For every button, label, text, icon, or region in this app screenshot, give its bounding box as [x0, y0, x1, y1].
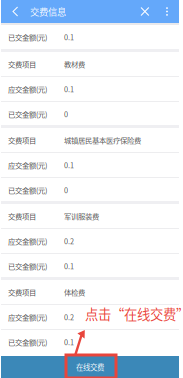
staticText: 0.2	[64, 312, 74, 322]
staticText: 0	[64, 109, 68, 119]
staticText: 0.1	[64, 32, 74, 42]
button[interactable]: 在线交费	[1, 356, 179, 378]
button[interactable]: Back	[1, 0, 30, 23]
staticText: 教材费	[64, 59, 85, 69]
staticText: 体检费	[64, 287, 85, 297]
staticText: 交费项目	[8, 135, 36, 145]
staticText: 军训服装费	[64, 211, 99, 221]
staticText: 已交金额(元)	[8, 32, 47, 42]
staticText: 0.1	[64, 261, 74, 271]
staticText: 0.1	[64, 160, 74, 170]
staticText: 已交金额(元)	[8, 109, 47, 119]
staticText: 交费项目	[8, 211, 36, 221]
staticText: 已交金额(元)	[8, 337, 47, 347]
staticText: 0.2	[64, 236, 74, 246]
staticText: 应交金额(元)	[8, 236, 47, 246]
button[interactable]: More options	[156, 0, 179, 23]
staticText: 应交金额(元)	[8, 312, 47, 322]
staticText: 在线交费	[76, 362, 104, 372]
staticText: 交费信息	[30, 5, 66, 18]
staticText: 交费项目	[8, 287, 36, 297]
staticText: 已交金额(元)	[8, 261, 47, 271]
staticText: 已交金额(元)	[8, 185, 47, 195]
staticText: 交费项目	[8, 59, 36, 69]
staticText: 点击“在线交费”	[85, 304, 183, 323]
button[interactable]: Close	[134, 0, 156, 23]
staticText: 0.1	[64, 337, 74, 347]
staticText: 应交金额(元)	[8, 160, 47, 170]
staticText: 0	[64, 185, 68, 195]
staticText: 应交金额(元)	[8, 84, 47, 94]
staticText: 城镇居民基本医疗保险费	[64, 135, 141, 145]
staticText: 0.1	[64, 84, 74, 94]
